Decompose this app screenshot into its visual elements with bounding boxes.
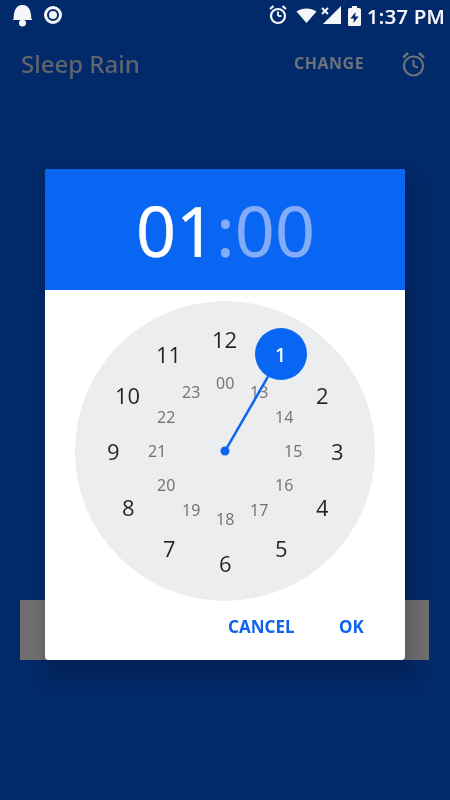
staticText: 14 [275, 406, 294, 428]
staticText: 10 [115, 380, 141, 410]
staticText: 13 [250, 381, 269, 403]
staticText: 16 [275, 474, 294, 496]
staticText: 2 [316, 380, 329, 410]
button[interactable]: 1 [255, 328, 307, 380]
button[interactable]: CANCEL [220, 607, 303, 646]
staticText: 7 [163, 533, 176, 563]
staticText: 01:00 [136, 182, 315, 277]
staticText: 20 [157, 474, 176, 496]
staticText: 18 [216, 508, 235, 530]
staticText: CANCEL [228, 615, 295, 638]
staticText: 15 [284, 440, 303, 462]
staticText: 5 [275, 533, 288, 563]
staticText: 9 [107, 436, 120, 466]
button[interactable]: OK [331, 607, 372, 646]
staticText: Sleep Rain [21, 47, 140, 80]
staticText: 6 [219, 548, 232, 578]
staticText: 22 [157, 406, 176, 428]
staticText: 00 [216, 372, 235, 394]
staticText: 1 [275, 341, 287, 368]
button[interactable]: CHANGE [288, 32, 371, 94]
staticText: 12 [212, 324, 238, 354]
staticText: 4 [316, 492, 329, 522]
staticText: 1:37 PM [367, 3, 446, 30]
staticText: 21 [148, 440, 167, 462]
staticText: CHANGE [294, 52, 365, 74]
staticText: 3 [331, 436, 344, 466]
staticText: OK [339, 615, 364, 638]
staticText: 8 [122, 492, 135, 522]
button[interactable] [20, 600, 429, 660]
staticText: 1 [275, 339, 288, 369]
staticText: 23 [182, 381, 201, 403]
staticText: 19 [182, 499, 201, 521]
staticText: 11 [156, 339, 182, 369]
button[interactable] [396, 47, 430, 81]
staticText: 17 [250, 499, 269, 521]
